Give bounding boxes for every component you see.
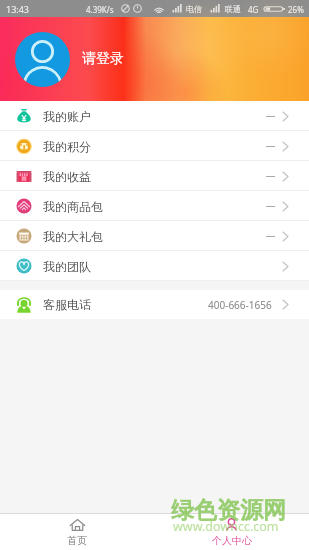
staticText: 联通 (225, 4, 241, 14)
staticText: 绿色资源网 (171, 496, 286, 525)
button[interactable]: 首页 (0, 514, 154, 550)
button[interactable]: 我的大礼包 (0, 221, 309, 251)
staticText: 我的账户 (43, 109, 91, 124)
staticText: 13:43 (6, 3, 30, 15)
staticText: 首页 (67, 534, 87, 547)
staticText: 4G (248, 4, 259, 15)
staticText: 电信 (186, 4, 202, 14)
staticText: 26% (288, 4, 304, 15)
staticText: 个人中心 (212, 534, 252, 547)
staticText: 4.39K/s (86, 4, 114, 15)
button[interactable]: 头像 Avatar (15, 32, 70, 87)
staticText: 我的积分 (43, 139, 91, 154)
button[interactable]: 我的团队 (0, 251, 309, 281)
staticText: www.downcc.com (173, 518, 279, 535)
staticText: 客服电话 (43, 297, 91, 312)
button[interactable]: 客服电话 (0, 290, 309, 319)
staticText: 我的商品包 (43, 199, 103, 214)
button[interactable]: 我的收益 (0, 161, 309, 191)
staticText: 我的收益 (43, 169, 91, 184)
button[interactable]: 我的商品包 (0, 191, 309, 221)
button[interactable]: 个人中心 (154, 514, 309, 550)
button[interactable]: 我的积分 (0, 131, 309, 161)
staticText: 我的团队 (43, 259, 91, 274)
staticText: 400-666-1656 (208, 298, 272, 312)
staticText: 我的大礼包 (43, 229, 103, 244)
button[interactable]: 我的账户 (0, 101, 309, 131)
button[interactable]: 请登录 (82, 50, 124, 68)
